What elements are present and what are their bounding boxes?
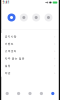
- button[interactable]: 자주 묻는 질문: [1, 55, 59, 62]
- staticText: ›: [54, 57, 55, 60]
- staticText: ›: [54, 64, 55, 67]
- button[interactable]: Category 4: [44, 13, 53, 22]
- staticText: ›: [54, 35, 55, 38]
- button[interactable]: 약관: [1, 69, 59, 77]
- button[interactable]: Home: [2, 88, 12, 99]
- button[interactable]: 이벤트: [1, 40, 59, 48]
- staticText: 약관: [5, 71, 11, 75]
- button[interactable]: 공지사항: [1, 33, 59, 40]
- staticText: 설정: [5, 64, 11, 67]
- button[interactable]: 설정: [1, 62, 59, 69]
- button[interactable]: Orders: [25, 88, 35, 99]
- staticText: 자주 묻는 질문: [5, 57, 25, 60]
- button[interactable]: Coupons: [36, 88, 46, 99]
- staticText: ›: [54, 42, 55, 46]
- button[interactable]: 고객센터: [1, 48, 59, 55]
- staticText: 고객센터: [5, 50, 17, 53]
- staticText: 9:41: [3, 1, 10, 4]
- button[interactable]: Category 3: [32, 13, 41, 22]
- staticText: 이벤트: [5, 42, 14, 46]
- button[interactable]: My Page: [48, 88, 58, 99]
- staticText: ›: [54, 71, 55, 75]
- staticText: 공지사항: [5, 35, 17, 38]
- button[interactable]: Category 1: [7, 13, 16, 22]
- button[interactable]: Search: [14, 88, 24, 99]
- staticText: ›: [54, 49, 55, 53]
- button[interactable]: Category 2: [19, 13, 28, 22]
